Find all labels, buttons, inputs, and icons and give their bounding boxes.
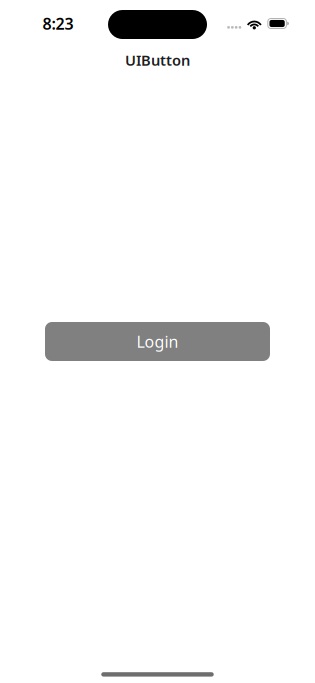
- staticText: UIButton: [125, 50, 190, 70]
- staticText: Login: [136, 331, 178, 352]
- staticText: 8:23: [42, 13, 73, 34]
- button[interactable]: Login: [45, 322, 270, 361]
